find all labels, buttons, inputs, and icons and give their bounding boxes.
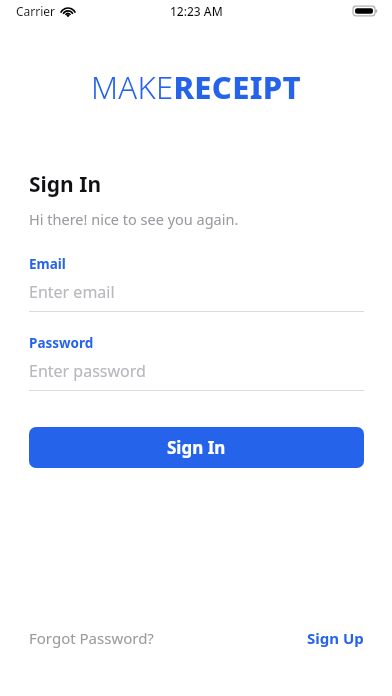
staticText: Sign Up bbox=[307, 628, 364, 648]
staticText: Forgot Password? bbox=[29, 628, 154, 648]
button[interactable]: Sign Up bbox=[307, 628, 364, 648]
staticText: Sign In bbox=[29, 170, 102, 199]
other: Battery full bbox=[353, 5, 378, 17]
button[interactable]: Sign In bbox=[29, 427, 364, 468]
staticText: Carrier bbox=[16, 3, 56, 19]
button[interactable]: Forgot Password? bbox=[29, 628, 154, 648]
staticText: Password bbox=[29, 334, 94, 352]
button[interactable]: Password bbox=[29, 334, 364, 391]
other: Wi-Fi signal bbox=[61, 6, 75, 17]
staticText: 12:23 AM bbox=[170, 3, 223, 19]
staticText: Enter password bbox=[29, 360, 146, 382]
button[interactable]: Email bbox=[29, 255, 364, 312]
staticText: Email bbox=[29, 255, 66, 273]
staticText: Hi there! nice to see you again. bbox=[29, 209, 239, 229]
staticText: Sign In bbox=[167, 436, 226, 459]
staticText: MAKERECEIPT bbox=[91, 66, 301, 108]
staticText: Enter email bbox=[29, 281, 115, 303]
